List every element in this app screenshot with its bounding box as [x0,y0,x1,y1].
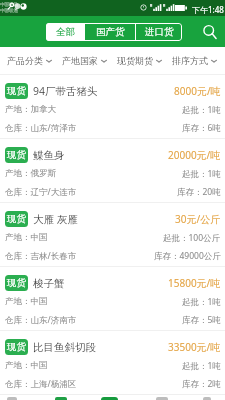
staticText: 15800元/吨 [168,276,221,290]
staticText: 仓库：山东/济南市 [5,314,77,326]
staticText: 产地：俄罗斯 [5,168,56,179]
staticText: 全部 [56,26,75,38]
staticText: 现货 [7,213,26,225]
staticText: 现货 [7,341,26,353]
button[interactable]: 市场 [55,397,67,400]
button[interactable]: Search [197,19,223,45]
staticText: 库存：49000公斤 [154,250,221,262]
staticText: 鲽鱼身 [33,149,65,162]
staticText: 起批：100公斤 [163,232,221,244]
staticText: 起批：1吨 [182,168,221,180]
button[interactable]: 现货 [0,267,225,330]
staticText: 库存：5吨 [182,314,221,326]
staticText: 33500元/吨 [168,340,221,354]
button[interactable]: 全部 [46,23,84,41]
button[interactable]: 排序方式 [167,47,222,74]
staticText: 梭子蟹 [33,277,65,290]
button[interactable]: 现货期货 [112,47,167,74]
button[interactable]: 现货 [0,395,225,400]
staticText: 30元/公斤 [175,212,221,226]
staticText: 排序方式 [172,55,208,66]
staticText: 中国联通 [0,8,18,14]
staticText: 现货 [7,85,26,97]
staticText: 库存：20吨 [177,186,221,198]
staticText: 产地：中国 [5,360,48,371]
staticText: 库存：2吨 [182,378,221,390]
staticText: 现货期货 [117,55,153,66]
staticText: 仓库：吉林/长春市 [5,250,77,262]
staticText: 比目鱼斜切段 [33,341,96,354]
staticText: 现货 [7,277,26,289]
button[interactable]: 消息 [156,397,168,400]
button[interactable]: Publish [101,397,118,400]
button[interactable]: 进口货 [136,23,182,41]
staticText: 起批：1吨 [182,296,221,308]
button[interactable]: 现货 [0,203,225,266]
staticText: 国产货 [96,26,125,38]
staticText: 8000元/吨 [174,84,221,98]
button[interactable]: 国产货 [85,23,135,41]
staticText: 94厂带舌猪头 [33,84,98,98]
staticText: 中国移动 [0,2,18,8]
staticText: 产地：加拿大 [5,104,56,115]
staticText: 仓库：山东/菏泽市 [5,122,77,134]
staticText: 产地：中国 [5,296,48,307]
button[interactable]: 产地国家 [57,47,112,74]
button[interactable]: 现货 [0,75,225,138]
button[interactable]: 现货 [0,139,225,202]
button[interactable]: 产品分类 [1,47,57,74]
staticText: 产地国家 [62,55,98,66]
button[interactable]: 首页 [7,397,17,400]
staticText: 起批：1吨 [182,104,221,116]
button[interactable]: 现货 [0,331,225,394]
staticText: 下午1:48 [192,4,224,15]
staticText: 仓库：上海/杨浦区 [5,378,77,390]
staticText: 仓库：辽宁/大连市 [5,186,77,198]
staticText: 起批：1吨 [182,360,221,372]
staticText: 库存：6吨 [182,122,221,134]
staticText: 产品分类 [7,55,43,66]
staticText: 产地：中国 [5,232,48,243]
staticText: 进口货 [145,26,174,38]
staticText: 现货 [7,149,26,161]
staticText: 20000元/吨 [168,148,221,162]
staticText: 大雁 灰雁 [33,212,78,226]
button[interactable]: 我的 [203,397,211,400]
